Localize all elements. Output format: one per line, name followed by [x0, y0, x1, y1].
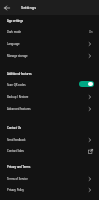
staticText: Advanced features: [7, 107, 31, 111]
button[interactable]: Scan QR codes: [0, 79, 99, 91]
button[interactable]: Backup / Restore: [0, 91, 99, 103]
button[interactable]: Send feedback: [0, 134, 99, 146]
button[interactable]: Contact Sales: [0, 145, 99, 157]
button[interactable]: Dark mode: [0, 26, 99, 38]
staticText: Dark mode: [7, 30, 22, 34]
staticText: App settings: [7, 19, 24, 23]
staticText: Contact Us: [7, 126, 21, 130]
button[interactable]: Back: [0, 0, 13, 15]
staticText: Privacy and Terms: [7, 165, 31, 169]
staticText: Settings: [21, 5, 37, 10]
button[interactable]: Language: [0, 38, 99, 50]
button[interactable]: Privacy Policy: [0, 184, 99, 196]
staticText: Scan QR codes: [7, 83, 26, 87]
staticText: Manage storage: [7, 54, 28, 58]
button[interactable]: Advanced features: [0, 103, 99, 115]
staticText: On: [89, 30, 93, 34]
staticText: Additional features: [7, 72, 32, 76]
staticText: Contact Sales: [7, 149, 24, 153]
button[interactable]: Terms of Service: [0, 173, 99, 185]
staticText: Backup / Restore: [7, 95, 29, 99]
staticText: Language: [7, 42, 20, 46]
staticText: Privacy Policy: [7, 188, 24, 192]
staticText: Terms of Service: [7, 177, 28, 181]
staticText: Send feedback: [7, 138, 26, 142]
button[interactable]: Manage storage: [0, 50, 99, 62]
